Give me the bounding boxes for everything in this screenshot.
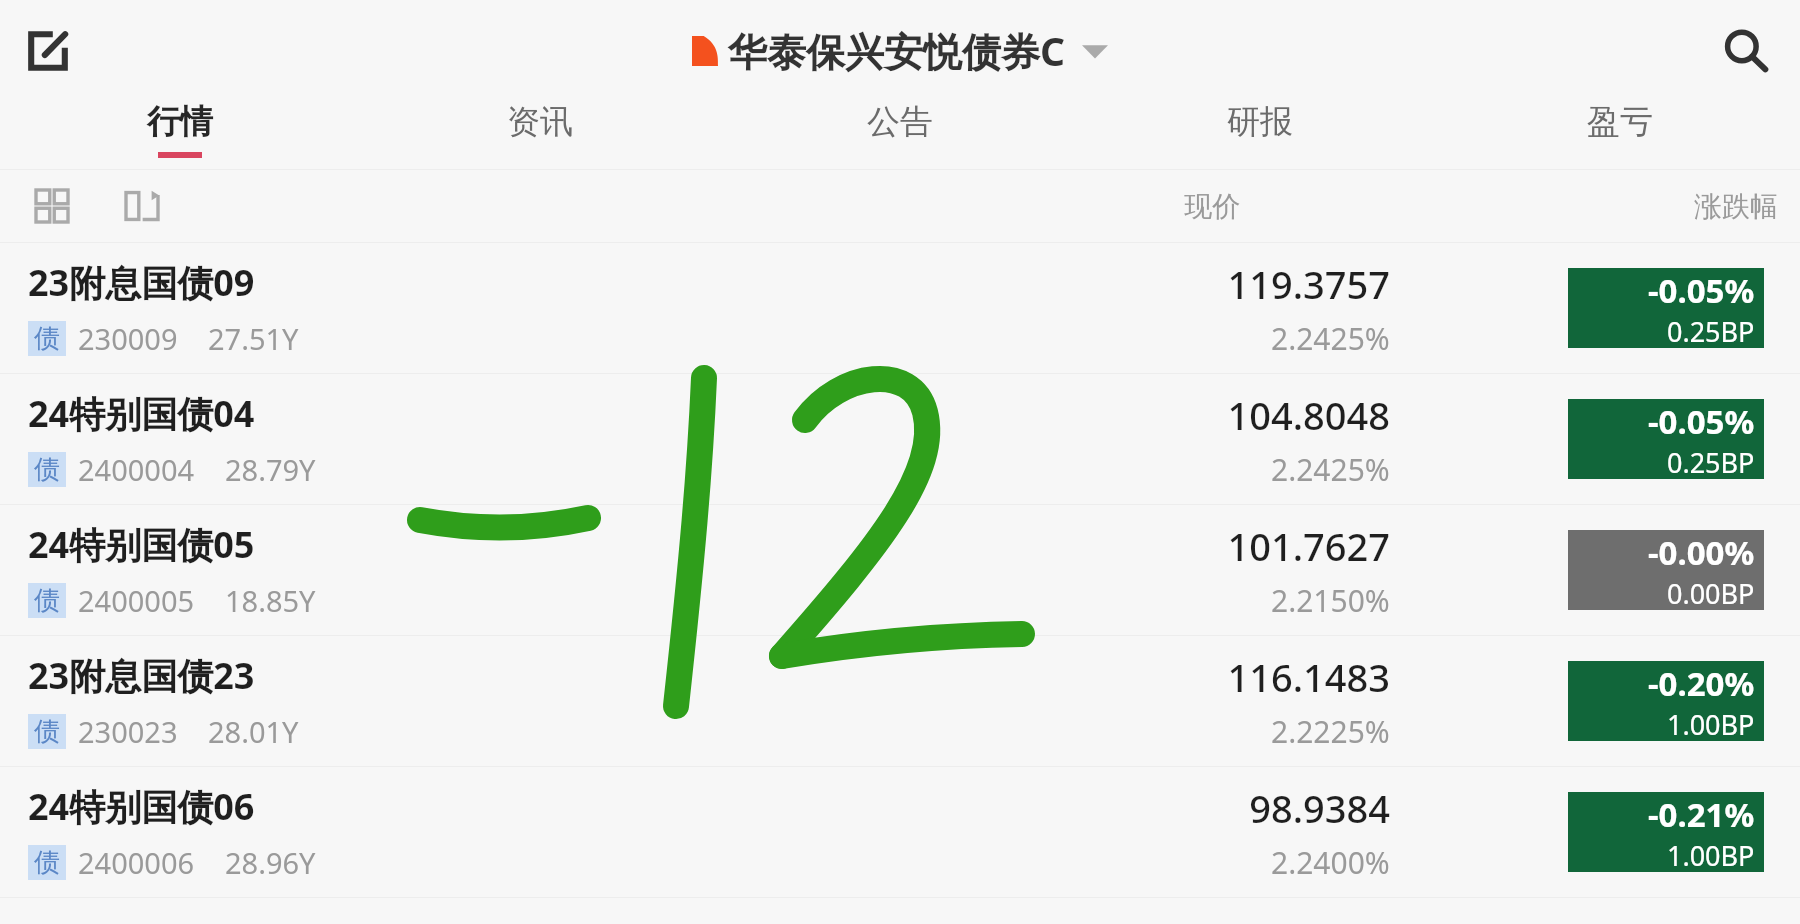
staticText: 24特别国债05 [28,520,255,569]
staticText: 23附息国债09 [28,258,255,307]
staticText: 101.7627 [1227,520,1390,572]
staticText: 28.79Y [225,450,316,489]
button[interactable]: -0.00% [1568,530,1764,610]
button[interactable]: 24特别国债06 [0,767,1800,897]
staticText: -0.20% [1648,661,1755,706]
staticText: 2.2400% [1271,842,1390,883]
staticText: 研报 [1227,101,1293,143]
staticText: 华泰保兴安悦债券C [728,24,1066,77]
staticText: 0.25BP [1667,444,1755,479]
staticText: 2.2150% [1271,580,1390,621]
button[interactable]: -0.05% [1568,268,1764,348]
staticText: 2400006 [78,843,195,882]
staticText: 230009 [78,319,178,358]
staticText: 1.00BP [1667,837,1755,872]
staticText: 公告 [867,101,933,143]
staticText: 债 [34,846,60,879]
staticText: 盈亏 [1587,101,1653,143]
staticText: -0.05% [1648,399,1755,444]
button[interactable]: 23附息国债23 [0,636,1800,766]
staticText: 0.00BP [1667,575,1755,610]
button[interactable]: -0.20% [1568,661,1764,741]
staticText: -0.21% [1648,792,1755,837]
staticText: 债 [34,322,60,355]
button[interactable]: 资讯 [360,101,720,158]
staticText: 98.9384 [1249,782,1390,834]
staticText: 现价 [1184,189,1240,224]
staticText: -0.00% [1648,530,1755,575]
staticText: 2.2225% [1271,711,1390,752]
staticText: 0.25BP [1667,313,1755,348]
staticText: 2.2425% [1271,318,1390,359]
button[interactable]: Switch columns [118,182,166,230]
staticText: 2.2425% [1271,449,1390,490]
staticText: 资讯 [507,101,573,143]
staticText: -0.05% [1648,268,1755,313]
staticText: 119.3757 [1227,258,1390,310]
staticText: 28.01Y [208,712,299,751]
button[interactable]: 24特别国债05 [0,505,1800,635]
button[interactable]: Search [1714,19,1778,83]
button[interactable]: 盈亏 [1440,101,1800,158]
staticText: 2400005 [78,581,195,620]
staticText: 24特别国债06 [28,782,255,831]
staticText: 债 [34,584,60,617]
staticText: 债 [34,715,60,748]
staticText: 涨跌幅 [1694,189,1778,224]
button[interactable]: 24特别国债04 [0,374,1800,504]
button[interactable]: 行情 [0,101,360,158]
button[interactable]: Grid view [28,182,76,230]
staticText: 债 [34,453,60,486]
staticText: 104.8048 [1227,389,1390,441]
button[interactable]: 华泰保兴安悦债券C [692,24,1108,77]
staticText: 28.96Y [225,843,316,882]
staticText: 行情 [147,101,213,143]
button[interactable]: 公告 [720,101,1080,158]
button[interactable]: 23附息国债09 [0,243,1800,373]
button[interactable]: -0.05% [1568,399,1764,479]
staticText: 116.1483 [1227,651,1390,703]
staticText: 18.85Y [225,581,316,620]
staticText: 27.51Y [208,319,299,358]
button[interactable]: -0.21% [1568,792,1764,872]
staticText: 230023 [78,712,178,751]
button[interactable]: Edit [18,21,78,81]
button[interactable]: 研报 [1080,101,1440,158]
staticText: 2400004 [78,450,195,489]
staticText: 24特别国债04 [28,389,255,438]
staticText: 23附息国债23 [28,651,255,700]
staticText: 1.00BP [1667,706,1755,741]
